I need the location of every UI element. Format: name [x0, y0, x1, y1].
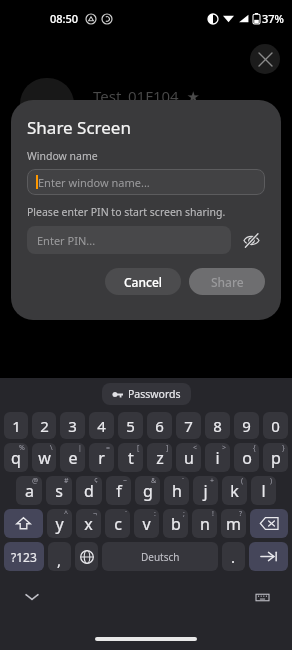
staticText: j [203, 480, 208, 502]
button[interactable]: h [164, 476, 189, 505]
staticText: ( [241, 476, 244, 486]
button[interactable]: a [16, 476, 42, 505]
button[interactable]: 5 [118, 412, 143, 439]
button[interactable]: q [4, 443, 28, 472]
button[interactable]: x [76, 509, 101, 538]
staticText: # [64, 476, 69, 486]
button[interactable]: Enter PIN... [27, 226, 231, 254]
button[interactable]: 6 [147, 412, 172, 439]
staticText: m [226, 513, 241, 535]
staticText: ? [239, 509, 243, 519]
staticText: c [114, 513, 122, 535]
staticText: b [171, 513, 181, 535]
button[interactable]: Close [250, 44, 280, 74]
button[interactable]: 1 [4, 412, 28, 439]
staticText: i [215, 447, 220, 469]
button[interactable]: 2 [32, 412, 56, 439]
button[interactable]: 8 [205, 412, 230, 439]
staticText: > [222, 443, 227, 453]
staticText: 1 [12, 416, 21, 436]
button[interactable]: z [147, 443, 172, 472]
button[interactable]: Show PIN [237, 226, 265, 254]
button[interactable]: k [222, 476, 247, 505]
staticText: 4 [97, 416, 106, 436]
staticText: f [116, 480, 122, 502]
staticText: 08:50 [50, 11, 79, 26]
staticText: u [184, 447, 194, 469]
button[interactable]: f [106, 476, 131, 505]
button[interactable]: b [163, 509, 188, 538]
button[interactable]: Backspace [250, 509, 288, 538]
button[interactable]: Hide keyboard [20, 585, 44, 609]
staticText: ] [166, 443, 169, 453]
staticText: h [172, 480, 182, 502]
button[interactable]: u [176, 443, 201, 472]
staticText: Share Screen [27, 116, 131, 139]
button[interactable]: , [48, 542, 71, 571]
button[interactable]: c [105, 509, 130, 538]
button[interactable]: s [46, 476, 72, 505]
button[interactable]: v [134, 509, 159, 538]
staticText: ¬ [93, 509, 98, 519]
staticText: + [210, 476, 215, 486]
staticText: l [261, 480, 266, 502]
staticText: z [156, 447, 164, 469]
staticText: y [55, 513, 64, 535]
button[interactable]: y [47, 509, 72, 538]
button[interactable]: Cancel [105, 268, 181, 295]
button[interactable]: Passwords [112, 387, 181, 401]
button[interactable]: t [118, 443, 143, 472]
button[interactable]: Symbols [4, 542, 44, 571]
button[interactable]: Share [189, 268, 265, 295]
button[interactable]: Space [102, 542, 218, 571]
staticText: Share [211, 274, 244, 290]
staticText: 7 [184, 416, 193, 436]
button[interactable]: e [60, 443, 85, 472]
button[interactable]: w [32, 443, 56, 472]
staticText: Cancel [124, 274, 163, 290]
button[interactable]: Keyboard switcher [250, 585, 274, 609]
button[interactable]: 7 [176, 412, 201, 439]
staticText: ` [125, 509, 127, 519]
button[interactable]: d [76, 476, 102, 505]
button[interactable]: n [192, 509, 217, 538]
button[interactable]: o [234, 443, 259, 472]
button[interactable]: Enter [249, 542, 288, 571]
staticText: @ [32, 476, 39, 486]
button[interactable]: . [222, 542, 245, 571]
staticText: 0 [271, 416, 280, 436]
button[interactable]: r [89, 443, 114, 472]
button[interactable]: 0 [263, 412, 288, 439]
staticText: o [242, 447, 252, 469]
staticText: ) [270, 476, 273, 486]
button[interactable]: 3 [60, 412, 85, 439]
button[interactable]: Shift [4, 509, 43, 538]
staticText: 3 [68, 416, 77, 436]
staticText: 8 [213, 416, 222, 436]
button[interactable]: 9 [234, 412, 259, 439]
staticText: 37% [262, 11, 284, 26]
staticText: Enter PIN... [37, 233, 96, 248]
staticText: s [55, 480, 63, 502]
staticText: Test_01F104 ★ [93, 86, 200, 106]
staticText: Passwords [128, 387, 181, 401]
staticText: ; [183, 509, 185, 519]
button[interactable]: j [193, 476, 218, 505]
staticText: { [253, 443, 256, 453]
button[interactable]: l [251, 476, 276, 505]
staticText: , [57, 550, 62, 570]
staticText: e [68, 447, 78, 469]
staticText: 6 [155, 416, 164, 436]
button[interactable]: 4 [89, 412, 114, 439]
button[interactable]: Enter window name... [27, 169, 265, 195]
staticText: d [84, 480, 94, 502]
button[interactable]: p [263, 443, 288, 472]
button[interactable]: g [135, 476, 160, 505]
staticText: 2 [40, 416, 49, 436]
button[interactable]: m [221, 509, 246, 538]
staticText: w [38, 447, 51, 469]
button[interactable]: i [205, 443, 230, 472]
button[interactable]: Change language [75, 542, 98, 571]
staticText: p [271, 447, 281, 469]
staticText: | [78, 443, 82, 453]
